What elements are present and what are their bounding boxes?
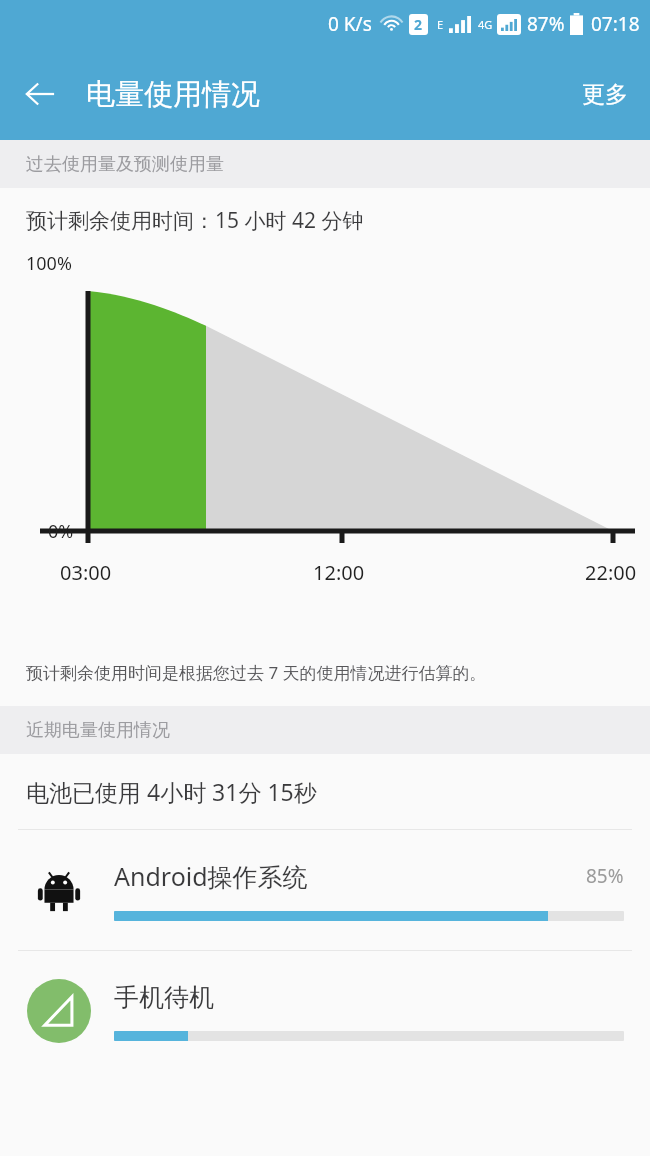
staticText: 87% (527, 11, 565, 37)
staticText: 电量使用情况 (86, 76, 260, 113)
staticText: 预计剩余使用时间：15 小时 42 分钟 (26, 206, 364, 235)
staticText: 手机待机 (114, 982, 624, 1013)
staticText: 0% (48, 519, 74, 544)
staticText: E (437, 17, 444, 32)
staticText: 22:00 (585, 559, 637, 586)
staticText: 电池已使用 4小时 31分 15秒 (26, 776, 317, 807)
staticText: 0 K/s (328, 11, 372, 37)
staticText: 2 (414, 15, 423, 34)
staticText: 03:00 (60, 559, 112, 586)
staticText: 12:00 (313, 559, 365, 586)
button[interactable]: 手机待机 (0, 951, 650, 1071)
staticText: 07:18 (591, 11, 640, 37)
button[interactable]: Back (12, 66, 68, 122)
staticText: 更多 (582, 80, 628, 109)
staticText: 预计剩余使用时间是根据您过去 7 天的使用情况进行估算的。 (26, 661, 487, 684)
staticText: 4G (478, 17, 493, 32)
staticText: Android操作系统 (114, 859, 586, 893)
staticText: 85% (586, 863, 624, 889)
staticText: 过去使用量及预测使用量 (26, 153, 224, 176)
button[interactable]: Android操作系统 (0, 830, 650, 950)
button[interactable]: 更多 (560, 62, 650, 127)
staticText: 近期电量使用情况 (26, 719, 170, 742)
staticText: 100% (26, 251, 72, 276)
